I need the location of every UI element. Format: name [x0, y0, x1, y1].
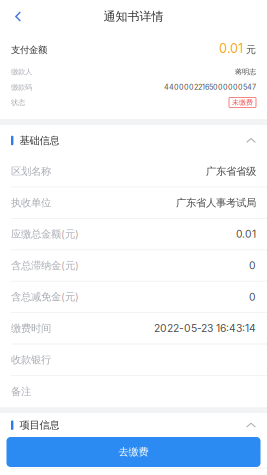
staticText: 未缴费 [232, 98, 253, 107]
staticText: 广东省省级 [206, 165, 256, 178]
staticText: 通知书详情 [103, 9, 163, 24]
staticText: 广东省人事考试局 [176, 196, 256, 209]
staticText: 0.01 [236, 228, 256, 240]
button[interactable]: 项目信息 [0, 413, 267, 437]
staticText: 0.01 [219, 41, 243, 56]
staticText: 44000022165000000547 [164, 83, 256, 92]
staticText: 含总滞纳金(元) [11, 259, 79, 272]
staticText: 备注 [11, 385, 31, 398]
staticText: 执收单位 [11, 196, 51, 209]
staticText: 收款银行 [11, 353, 51, 366]
staticText: 缴款码 [11, 83, 32, 92]
staticText: 应缴总金额(元) [11, 228, 79, 241]
staticText: 0 [249, 291, 256, 303]
staticText: 缴款人 [11, 67, 32, 76]
staticText: 去缴费 [118, 446, 148, 458]
staticText: 状态 [11, 98, 25, 107]
button[interactable]: Back [0, 0, 27, 33]
staticText: 基础信息 [19, 134, 59, 147]
staticText: 元 [243, 43, 256, 56]
staticText: 缴费时间 [11, 322, 51, 335]
staticText: 0 [249, 259, 256, 272]
button[interactable]: 去缴费 [6, 437, 260, 467]
staticText: 区划名称 [11, 165, 51, 178]
staticText: 含总减免金(元) [11, 290, 79, 303]
staticText: 支付金额 [11, 44, 47, 56]
button[interactable]: 基础信息 [0, 125, 267, 156]
staticText: 项目信息 [19, 419, 59, 432]
staticText: 2022-05-23 16:43:14 [154, 322, 256, 334]
staticText: 蒋明志 [235, 67, 256, 76]
